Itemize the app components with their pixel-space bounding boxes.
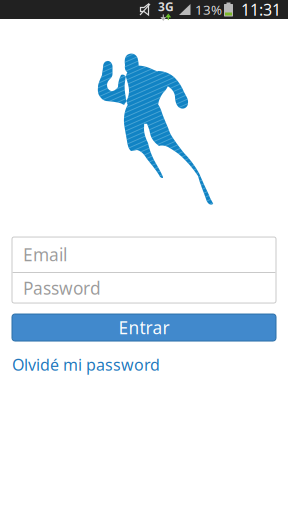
staticText: Password xyxy=(23,276,101,299)
staticText: Email xyxy=(23,243,67,266)
button[interactable]: Entrar xyxy=(12,314,276,341)
staticText: 13% xyxy=(195,1,222,18)
button[interactable]: Email xyxy=(12,237,276,272)
button[interactable]: Olvidé mi password xyxy=(12,354,160,375)
staticText: 3G xyxy=(158,0,174,14)
staticText: Entrar xyxy=(118,316,169,339)
staticText: 11:31 xyxy=(241,0,281,20)
staticText: Olvidé mi password xyxy=(12,354,160,375)
button[interactable]: Password xyxy=(12,273,276,303)
